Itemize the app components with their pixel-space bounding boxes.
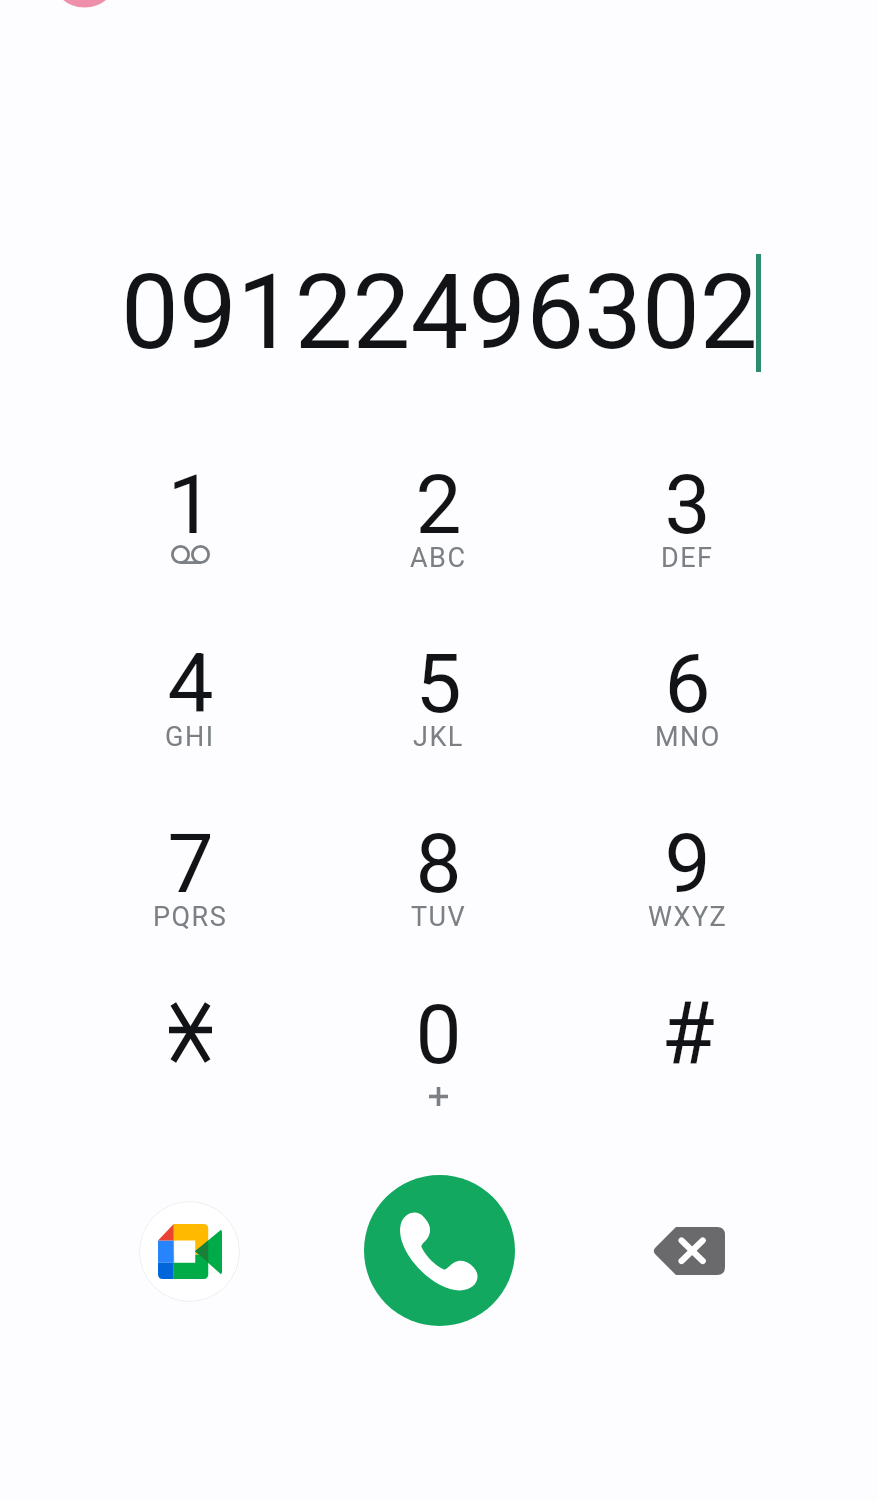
staticText: 8 (415, 816, 462, 902)
staticText: 0 (415, 987, 462, 1073)
staticText: TUV (411, 901, 467, 933)
staticText: 3 (664, 457, 711, 543)
staticText: 9 (664, 816, 711, 902)
staticText: 09122496302 (121, 252, 758, 373)
staticText: # (661, 982, 715, 1068)
staticText: 2 (415, 457, 462, 543)
button[interactable]: Backspace (639, 1200, 739, 1300)
staticText: 1 (167, 457, 214, 543)
staticText: PQRS (153, 901, 228, 933)
staticText: 4 (167, 636, 214, 722)
button[interactable]: 9 WXYZ (563, 816, 812, 996)
staticText: GHI (165, 721, 215, 753)
staticText: WXYZ (648, 901, 728, 933)
button[interactable]: # (563, 987, 812, 1167)
button[interactable]: 0 plus (314, 987, 563, 1167)
staticText: 5 (415, 636, 462, 722)
staticText: MNO (655, 721, 721, 753)
button[interactable]: 2 ABC (314, 457, 563, 637)
button[interactable]: Video call (139, 1201, 240, 1302)
staticText: DEF (661, 542, 714, 574)
staticText: ABC (410, 542, 467, 574)
staticText: 7 (167, 816, 214, 902)
button[interactable]: 5 JKL (314, 636, 563, 816)
button[interactable]: 3 DEF (563, 457, 812, 637)
button[interactable]: 7 PQRS (66, 816, 314, 996)
button[interactable]: star (66, 987, 314, 1167)
button[interactable]: 1 voicemail (66, 457, 314, 637)
button[interactable]: Call (364, 1175, 515, 1326)
button[interactable]: 8 TUV (314, 816, 563, 996)
staticText: JKL (413, 721, 464, 753)
button[interactable]: 4 GHI (66, 636, 314, 816)
button[interactable]: 6 MNO (563, 636, 812, 816)
staticText: 6 (664, 636, 711, 722)
